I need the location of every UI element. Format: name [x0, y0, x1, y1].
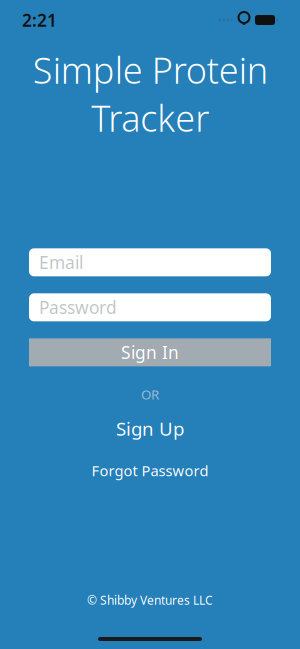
staticText: 2:21 — [22, 8, 57, 31]
staticText: Sign In — [121, 341, 179, 364]
staticText: Password — [39, 296, 117, 319]
button[interactable]: Sign In — [29, 338, 271, 366]
staticText: Simple Protein Tracker — [32, 46, 267, 142]
staticText: Forgot Password — [91, 461, 208, 480]
staticText: © Shibby Ventures LLC — [87, 592, 213, 608]
button[interactable]: Sign Up — [96, 411, 204, 446]
button[interactable]: Forgot Password — [71, 456, 228, 485]
staticText: Sign Up — [116, 416, 184, 441]
staticText: Email — [39, 251, 83, 274]
staticText: OR — [141, 385, 159, 403]
